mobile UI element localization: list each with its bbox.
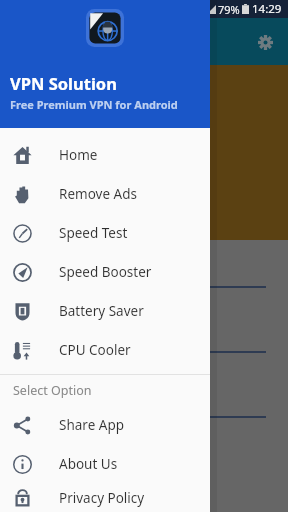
button[interactable]: Battery Saver <box>0 291 210 330</box>
staticText: Home <box>59 146 98 164</box>
button[interactable]: About Us <box>0 444 210 483</box>
staticText: Select Option <box>13 382 92 399</box>
staticText: Free Premium VPN for Android <box>10 97 178 112</box>
button[interactable]: Speed Booster <box>0 252 210 291</box>
staticText: Privacy Policy <box>59 489 145 507</box>
button[interactable]: Speed Test <box>0 213 210 252</box>
button[interactable]: Settings <box>250 27 280 57</box>
button[interactable]: Home <box>0 135 210 174</box>
button[interactable]: Share App <box>0 405 210 444</box>
staticText: 14:29 <box>252 1 282 17</box>
staticText: Remove Ads <box>59 185 137 203</box>
staticText: CPU Cooler <box>59 341 131 359</box>
staticText: Speed Test <box>59 224 128 242</box>
staticText: Speed Booster <box>59 263 152 281</box>
staticText: About Us <box>59 455 118 473</box>
button[interactable]: Remove Ads <box>0 174 210 213</box>
staticText: VPN Solution <box>10 72 117 94</box>
staticText: Battery Saver <box>59 302 144 320</box>
staticText: Share App <box>59 416 124 434</box>
staticText: 79% <box>218 2 240 17</box>
button[interactable]: Privacy Policy <box>0 483 210 512</box>
button[interactable]: CPU Cooler <box>0 330 210 369</box>
